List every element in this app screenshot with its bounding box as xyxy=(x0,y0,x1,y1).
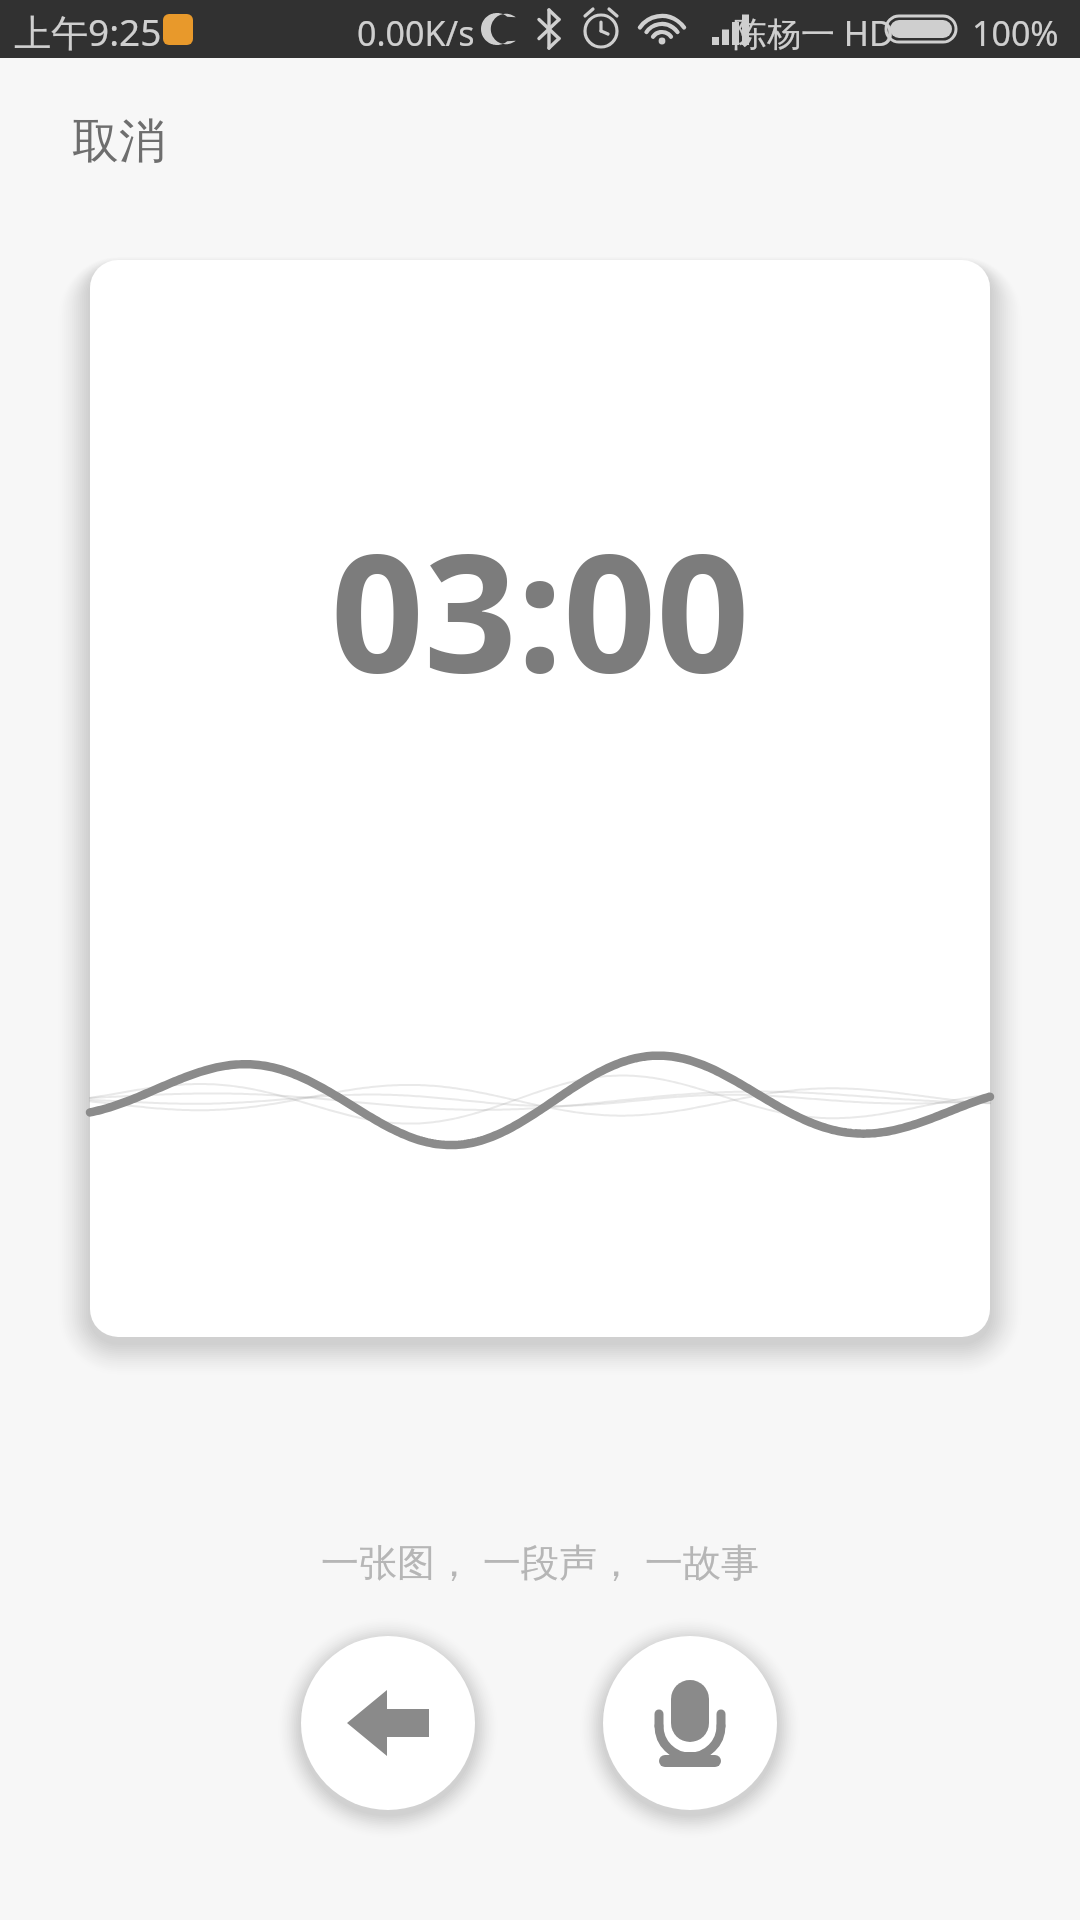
button[interactable]: 取消 xyxy=(56,98,182,185)
staticText: 取消 xyxy=(72,112,166,171)
button[interactable]: Record xyxy=(603,1636,777,1810)
staticText: 03:00 xyxy=(0,498,1080,720)
staticText: 一张图， 一段声， 一故事 xyxy=(0,1535,1080,1587)
staticText: 100% xyxy=(972,10,1059,56)
staticText: 上午9:25 xyxy=(14,6,162,57)
staticText: 0.00K/s xyxy=(357,10,475,56)
button[interactable]: Back xyxy=(301,1636,475,1810)
staticText: 陈杨一 HD xyxy=(733,10,894,56)
